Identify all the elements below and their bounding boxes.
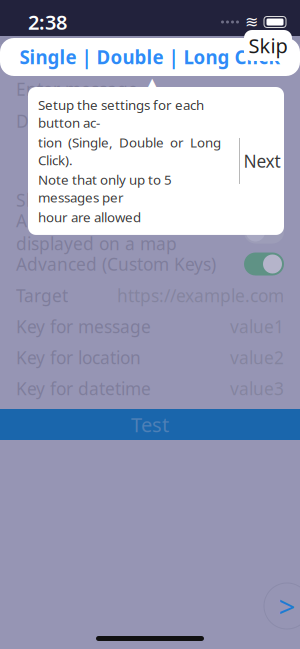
staticText: Enter title [16,47,95,70]
staticText: Single | Double | Long Click [19,45,280,69]
staticText: Setup the settings for each button ac- [38,96,204,131]
staticText: hour are allowed [38,208,141,226]
staticText: Next [243,149,280,172]
button[interactable]: Allow action to be displayed on a map [0,216,300,248]
staticText: Description [16,109,108,132]
staticText: Enter message [16,77,138,100]
button[interactable]: Skip [244,30,292,61]
staticText: 2:38 [28,9,67,35]
staticText: Allow action to be displayed on a map [16,209,177,255]
staticText: https://example.com [117,284,284,307]
staticText: value2 [230,346,284,369]
button[interactable]: Target [0,280,300,311]
staticText: value1 [230,315,284,338]
button[interactable]: Key for message [0,311,300,342]
staticText: Key for location [16,346,141,369]
button[interactable]: Test [0,409,300,440]
staticText: ▲ [146,74,158,93]
staticText: Key for datetime [16,377,151,400]
staticText: Skip notification [16,188,145,211]
button[interactable]: Key for location [0,342,300,373]
staticText: Key for message [16,315,151,338]
staticText: Skip [248,32,287,59]
button[interactable]: Skip notification [0,184,300,216]
button[interactable]: Single | Double | Long Click [19,45,280,69]
staticText: Target [16,284,68,307]
staticText: Advanced (Custom Keys) [16,252,216,275]
staticText: value3 [230,377,284,400]
button[interactable]: Next [264,583,300,629]
staticText: tion (Single, Double or Long Click). [38,133,221,169]
staticText: > [278,586,295,625]
staticText: ≋ [245,13,258,31]
button[interactable]: Next [240,149,284,172]
button[interactable]: Advanced (Custom Keys) [0,248,300,280]
staticText: Test [131,411,169,438]
button[interactable]: Key for datetime [0,373,300,404]
staticText: Note that only up to 5 messages per [38,171,172,206]
